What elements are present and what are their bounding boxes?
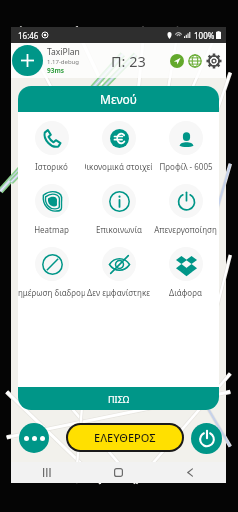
button[interactable]: ΠΙΣΩ — [18, 387, 219, 410]
button[interactable]: Διάφορα — [152, 247, 219, 310]
button[interactable]: Back — [154, 462, 226, 483]
button[interactable]: Globe — [188, 54, 202, 68]
staticText: Heatmap — [34, 224, 69, 235]
button[interactable]: Επικοινωνία — [85, 184, 152, 247]
button[interactable]: Navigate — [170, 54, 184, 68]
staticText: Μενού — [100, 91, 138, 107]
button[interactable]: Μενού — [18, 86, 219, 112]
button[interactable]: More options — [19, 423, 49, 453]
button[interactable]: Ιστορικό — [18, 121, 85, 184]
staticText: Διάφορα — [169, 287, 202, 298]
staticText: 1.17-debug — [47, 58, 79, 66]
button[interactable]: Home — [82, 462, 154, 483]
button[interactable]: Settings — [206, 53, 222, 69]
staticText: 100% — [194, 30, 215, 41]
button[interactable]: Heatmap — [18, 184, 85, 247]
staticText: Ενημέρωση διαδρομής — [18, 287, 85, 298]
button[interactable]: Power — [191, 423, 222, 454]
button[interactable]: Add — [12, 45, 43, 76]
staticText: Οικονομικά στοιχεία — [85, 161, 152, 172]
button[interactable]: ΕΛΕΥΘΕΡΟΣ — [68, 425, 182, 450]
staticText: Π: 23 — [111, 51, 146, 71]
staticText: Ιστορικό — [35, 161, 68, 172]
staticText: ΠΙΣΩ — [108, 393, 130, 405]
button[interactable]: Δεν εμφανίστηκε — [85, 247, 152, 310]
staticText: 93ms — [47, 66, 65, 75]
staticText: TaxiPlan — [47, 46, 80, 58]
button[interactable]: Απενεργοποίηση — [152, 184, 219, 247]
staticText: 16:46 — [18, 30, 39, 41]
staticText: ΕΛΕΥΘΕΡΟΣ — [94, 430, 156, 445]
staticText: Προφίλ - 6005 — [159, 161, 213, 172]
staticText: Επικοινωνία — [96, 224, 142, 235]
button[interactable]: Ενημέρωση διαδρομής — [18, 247, 85, 310]
button[interactable]: Οικονομικά στοιχεία — [85, 121, 152, 184]
button[interactable]: Recents — [11, 462, 82, 483]
button[interactable]: Προφίλ - 6005 — [152, 121, 219, 184]
staticText: Απενεργοποίηση — [154, 224, 217, 235]
staticText: Δεν εμφανίστηκε — [87, 287, 150, 298]
